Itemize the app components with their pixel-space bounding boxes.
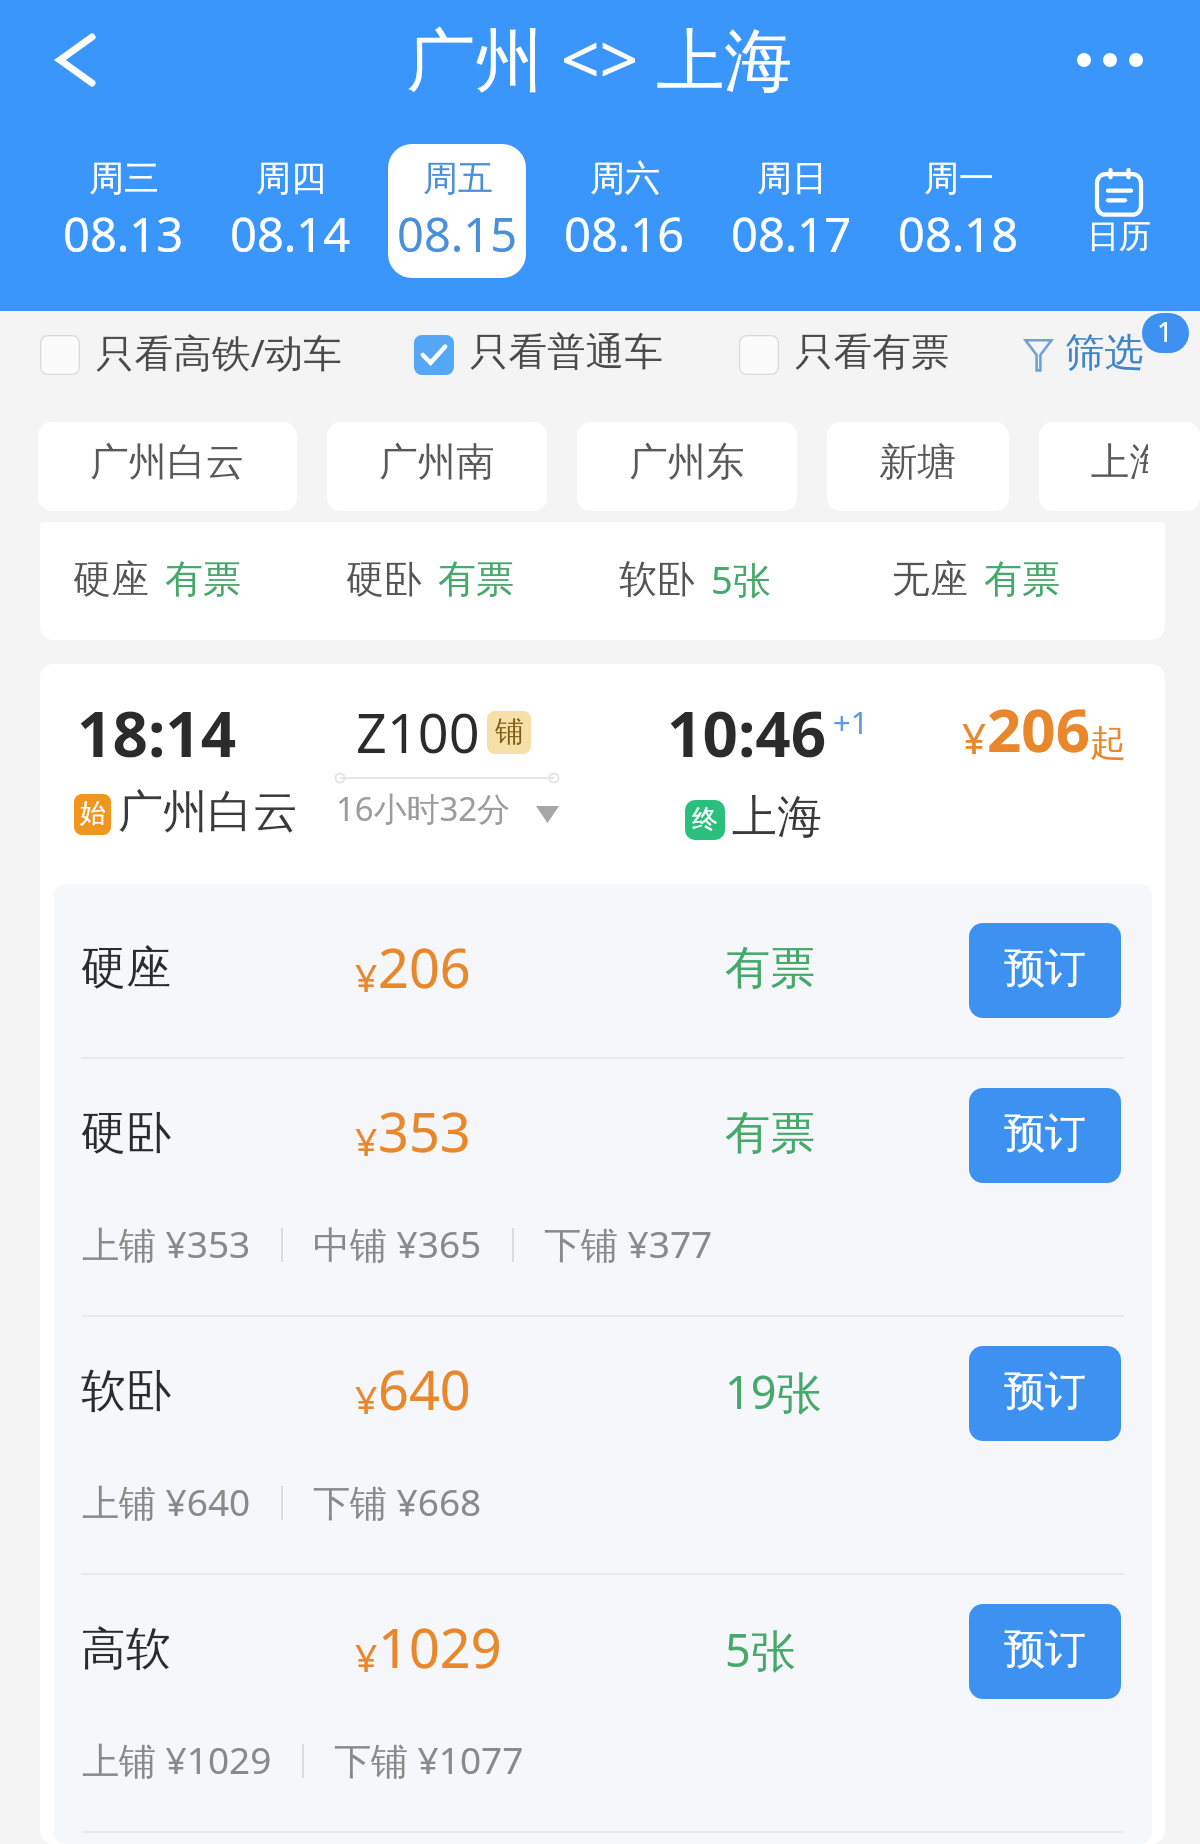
staticText: 08.17 [731,202,852,266]
staticText: 下铺 ¥1077 [334,1734,524,1785]
staticText: 640 [378,1352,471,1426]
staticText: 有票 [438,555,514,603]
staticText: 始 [80,797,106,830]
button[interactable]: 周三 [54,144,192,278]
staticText: 软卧 [81,1363,351,1420]
staticText: ¥ [355,1372,378,1425]
staticText: 18:14 [77,691,237,775]
staticText: 预订 [1004,1366,1086,1418]
staticText: 只看普通车 [470,328,663,377]
staticText: 206 [987,688,1090,770]
staticText: 上海 [1091,438,1148,487]
staticText: 广州白云 [90,438,245,487]
staticText: 08.13 [63,202,184,266]
staticText: ¥ [962,709,987,766]
button[interactable]: 软卧 [619,553,892,605]
staticText: 08.14 [230,202,351,266]
staticText: 有票 [984,555,1060,603]
staticText: 起 [1090,720,1126,765]
staticText: 高软 [81,1621,351,1678]
button[interactable]: 广州白云 [38,422,297,511]
staticText: 08.18 [898,202,1019,266]
staticText: 1029 [378,1610,502,1684]
button[interactable]: 周一 [889,144,1027,278]
button[interactable]: 广州东 [577,422,797,511]
button[interactable]: 周五 [388,144,526,278]
staticText: +1 [833,701,869,743]
staticText: 上铺 ¥1029 [82,1734,272,1785]
staticText: 广州 <> 上海 [407,11,793,104]
button[interactable]: 18:14 [40,664,1165,884]
staticText: 周三 [89,156,159,200]
button[interactable]: 只看有票 [739,330,950,379]
button[interactable]: 硬卧 [346,555,619,603]
staticText: 硬座 [73,555,149,603]
staticText: 上铺 ¥353 [82,1218,251,1269]
staticText: 16小时32分 [336,786,510,831]
button[interactable]: Back [40,16,112,104]
staticText: 终 [692,803,718,836]
staticText: ¥ [355,1114,378,1167]
staticText: 10:46 [667,691,827,775]
button[interactable]: 只看高铁/动车 [40,328,342,381]
button[interactable]: Show schedule details [336,788,559,833]
staticText: 预订 [1004,1108,1086,1160]
staticText: 广州东 [629,438,745,487]
staticText: 5张 [711,553,771,605]
staticText: 新塘 [879,438,957,487]
staticText: 无座 [892,555,968,603]
staticText: 日历 [1087,216,1151,256]
staticText: 353 [378,1094,471,1168]
staticText: 周五 [423,156,493,200]
button[interactable]: 预订 [969,1346,1121,1441]
button[interactable]: 上海 [1039,422,1200,511]
button[interactable]: 周四 [221,144,359,278]
staticText: 08.15 [397,202,518,266]
button[interactable]: 广州南 [327,422,547,511]
button[interactable]: 预订 [969,923,1121,1018]
staticText: 206 [378,930,471,1004]
button[interactable]: 周日 [722,144,860,278]
button[interactable]: 新塘 [827,422,1009,511]
button[interactable]: 预订 [969,1604,1121,1699]
staticText: 广州白云 [118,784,298,841]
button[interactable]: 周六 [555,144,693,278]
staticText: 硬座 [81,940,351,997]
button[interactable]: More options [1054,16,1166,104]
staticText: 有票 [725,940,969,997]
staticText: 周一 [924,156,994,200]
staticText: Z100 [356,695,480,769]
button[interactable]: 预订 [969,1088,1121,1183]
staticText: 预订 [1004,1624,1086,1676]
staticText: 有票 [725,1105,969,1162]
staticText: 下铺 ¥377 [544,1218,713,1269]
staticText: 筛选 [1065,328,1144,377]
button[interactable]: Calendar [1041,170,1196,269]
staticText: 只看高铁/动车 [96,326,342,379]
button[interactable]: 硬座 [73,555,346,603]
staticText: 1 [1157,313,1174,350]
staticText: 下铺 ¥668 [313,1476,482,1527]
button[interactable]: 只看普通车 [414,330,663,379]
staticText: 5张 [725,1619,969,1680]
staticText: 广州南 [379,438,495,487]
staticText: 硬卧 [346,555,422,603]
staticText: 铺 [495,713,524,750]
staticText: 预订 [1004,943,1086,995]
staticText: ¥ [355,950,378,1003]
staticText: 周四 [256,156,326,200]
staticText: 上铺 ¥640 [82,1476,251,1527]
staticText: 只看有票 [795,328,950,377]
staticText: 19张 [725,1361,969,1422]
staticText: ¥ [355,1630,378,1683]
staticText: 08.16 [564,202,685,266]
staticText: 上海 [732,789,822,846]
staticText: 有票 [165,555,241,603]
staticText: 硬卧 [81,1105,351,1162]
staticText: 周六 [590,156,660,200]
staticText: 周日 [757,156,827,200]
button[interactable]: 筛选 [1025,330,1144,379]
button[interactable]: 无座 [892,555,1165,603]
staticText: 软卧 [619,555,695,603]
staticText: 中铺 ¥365 [313,1218,482,1269]
